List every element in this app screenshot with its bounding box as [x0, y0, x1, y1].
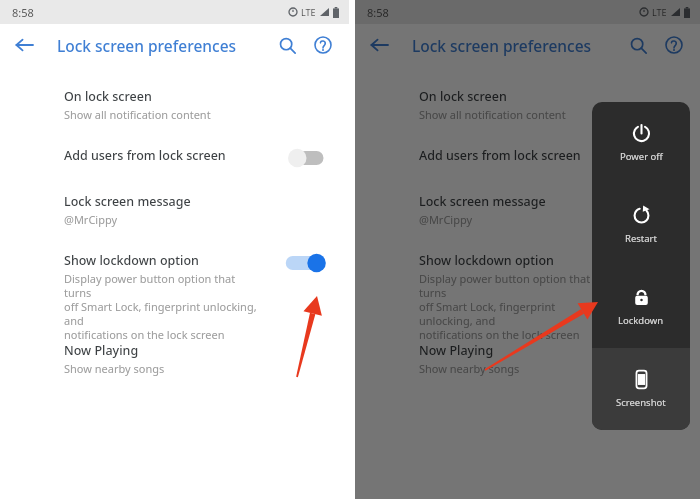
button[interactable]: Add users from lock screen — [355, 147, 700, 175]
button[interactable]: Show lockdown option — [0, 252, 349, 342]
button[interactable]: Lock screen message — [355, 193, 700, 227]
staticText: Show lockdown option — [64, 252, 199, 269]
button[interactable]: Search — [271, 29, 303, 61]
button[interactable]: Lock screen preferences — [57, 35, 237, 56]
staticText: @MrCippy — [64, 212, 118, 227]
staticText: On lock screen — [419, 88, 507, 105]
button[interactable]: Screenshot — [592, 348, 690, 430]
staticText: Power off — [620, 150, 663, 163]
button[interactable]: Off — [634, 144, 680, 172]
button[interactable]: Lockdown — [592, 266, 690, 348]
button[interactable]: Power off — [592, 102, 690, 184]
staticText: Display power button option that turns o… — [64, 271, 259, 342]
staticText: Now Playing — [419, 342, 494, 359]
button[interactable]: On — [283, 249, 329, 277]
staticText: Lock screen message — [64, 193, 191, 210]
staticText: Show nearby songs — [64, 361, 165, 376]
staticText: Add users from lock screen — [419, 147, 581, 164]
button[interactable]: Lock screen message — [0, 193, 349, 227]
staticText: On lock screen — [64, 88, 152, 105]
staticText: 8:58 — [12, 5, 34, 20]
staticText: Lockdown — [618, 314, 664, 327]
button[interactable]: Lock screen preferences — [412, 35, 592, 56]
button[interactable]: On lock screen — [0, 88, 349, 122]
staticText: LTE — [652, 6, 667, 18]
staticText: LTE — [301, 6, 316, 18]
button[interactable]: Off — [283, 144, 329, 172]
staticText: Show lockdown option — [419, 252, 554, 269]
button[interactable]: Help — [307, 29, 339, 61]
staticText: Screenshot — [616, 396, 666, 409]
staticText: Add users from lock screen — [64, 147, 226, 164]
button[interactable]: Add users from lock screen — [0, 147, 349, 175]
button[interactable]: On lock screen — [355, 88, 700, 122]
staticText: Show all notification content — [419, 107, 566, 122]
staticText: Display power button option that turns o… — [419, 271, 610, 342]
staticText: Show nearby songs — [419, 361, 520, 376]
button[interactable]: Show lockdown option — [355, 252, 700, 342]
staticText: 8:58 — [367, 5, 389, 20]
button[interactable]: Now Playing — [0, 342, 349, 376]
staticText: Lock screen message — [419, 193, 546, 210]
button[interactable]: Restart — [592, 184, 690, 266]
staticText: Now Playing — [64, 342, 139, 359]
button[interactable]: Back — [363, 29, 395, 61]
staticText: @MrCippy — [419, 212, 473, 227]
button[interactable]: Help — [658, 29, 690, 61]
button[interactable]: Back — [8, 29, 40, 61]
staticText: Show all notification content — [64, 107, 211, 122]
staticText: Restart — [625, 232, 657, 245]
button[interactable]: Search — [622, 29, 654, 61]
button[interactable]: Now Playing — [355, 342, 700, 376]
